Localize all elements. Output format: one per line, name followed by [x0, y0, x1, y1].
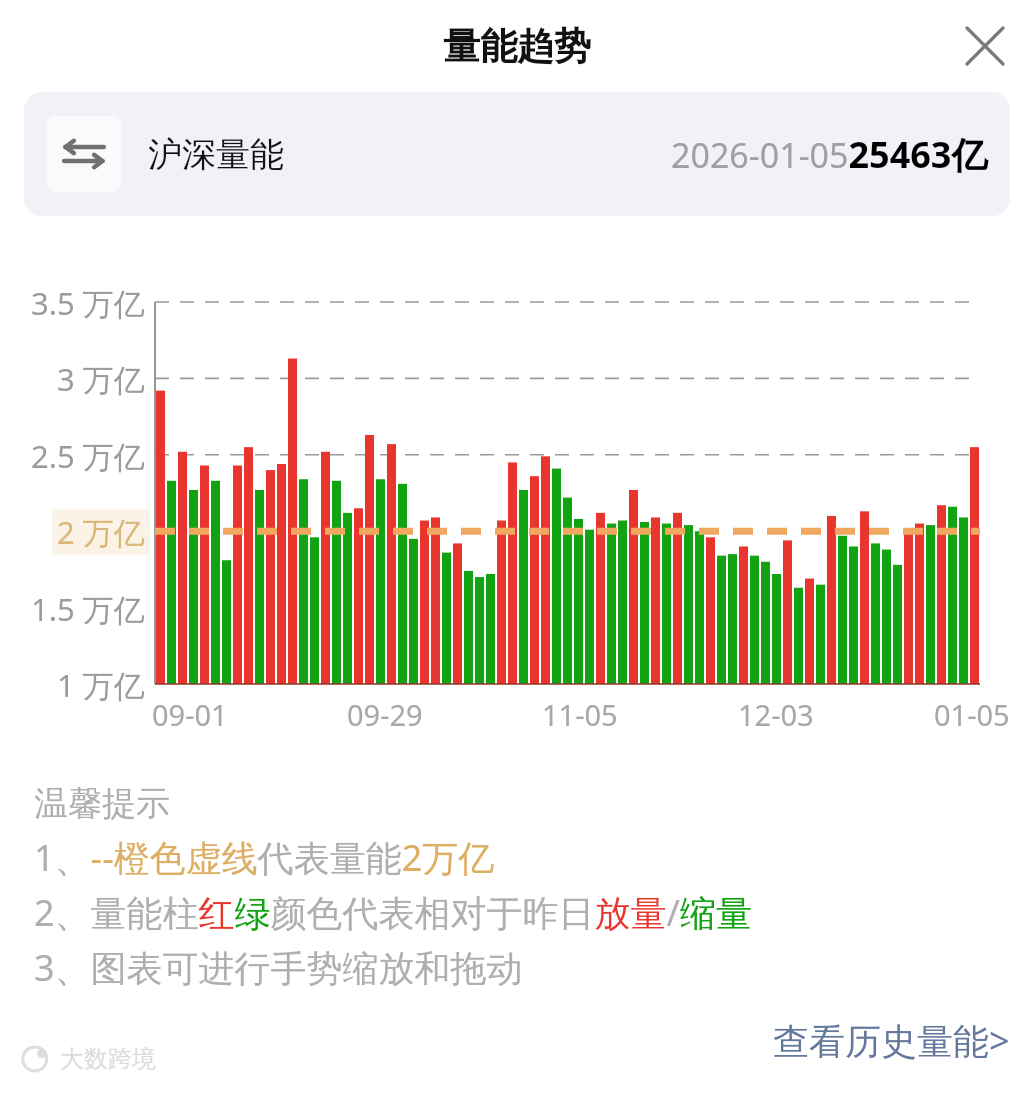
staticText: 09-01 — [152, 695, 228, 734]
staticText: 2、量能柱红绿颜色代表相对于昨日放量/缩量 — [34, 888, 752, 937]
staticText: 1 万亿 — [57, 664, 145, 706]
staticText: 01-05 — [934, 695, 1010, 734]
staticText: 2 万亿 — [57, 511, 145, 553]
staticText: 09-29 — [347, 695, 423, 734]
staticText: 温馨提示 — [34, 782, 170, 825]
staticText: 1.5 万亿 — [31, 588, 145, 630]
staticText: 2026-01-0525463亿 — [671, 130, 988, 179]
staticText: 3、图表可进行手势缩放和拖动 — [34, 943, 523, 992]
staticText: 3.5 万亿 — [31, 282, 145, 324]
staticText: 大数跨境 — [60, 1044, 156, 1074]
staticText: 3 万亿 — [57, 358, 145, 400]
staticText: 1、--橙色虚线代表量能2万亿 — [34, 833, 495, 882]
staticText: 查看历史量能> — [773, 1016, 1010, 1065]
button[interactable]: Close — [954, 15, 1016, 77]
staticText: 量能趋势 — [443, 23, 591, 70]
button[interactable]: 查看历史量能> — [757, 1010, 1034, 1071]
staticText: 12-03 — [738, 695, 814, 734]
button[interactable]: Switch index — [24, 92, 1010, 216]
other: Switch index — [46, 116, 122, 192]
staticText: 11-05 — [542, 695, 618, 734]
staticText: 2.5 万亿 — [31, 435, 145, 477]
staticText: 沪深量能 — [148, 133, 284, 176]
